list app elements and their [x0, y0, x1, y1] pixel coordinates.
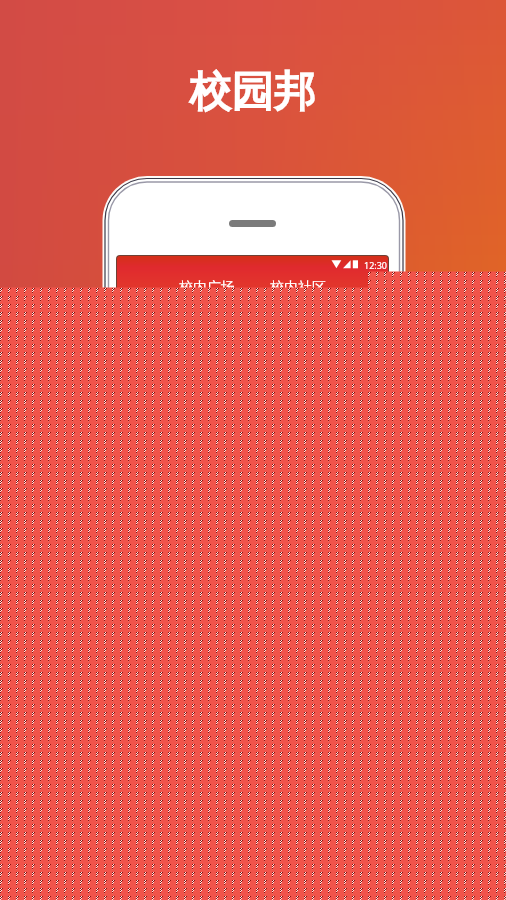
button[interactable]: 广播站 — [344, 276, 388, 300]
staticText: 广播站 — [368, 279, 388, 297]
button[interactable]: 校内广场 — [162, 276, 252, 300]
staticText: 校内社区 — [270, 279, 326, 297]
staticText: 校园邦 — [190, 65, 316, 118]
staticText: 校内广场 — [179, 279, 235, 297]
button[interactable]: 校内社区 — [253, 276, 343, 300]
staticText: 校园邦 — [190, 65, 316, 118]
staticText: 12:30 — [364, 259, 388, 271]
